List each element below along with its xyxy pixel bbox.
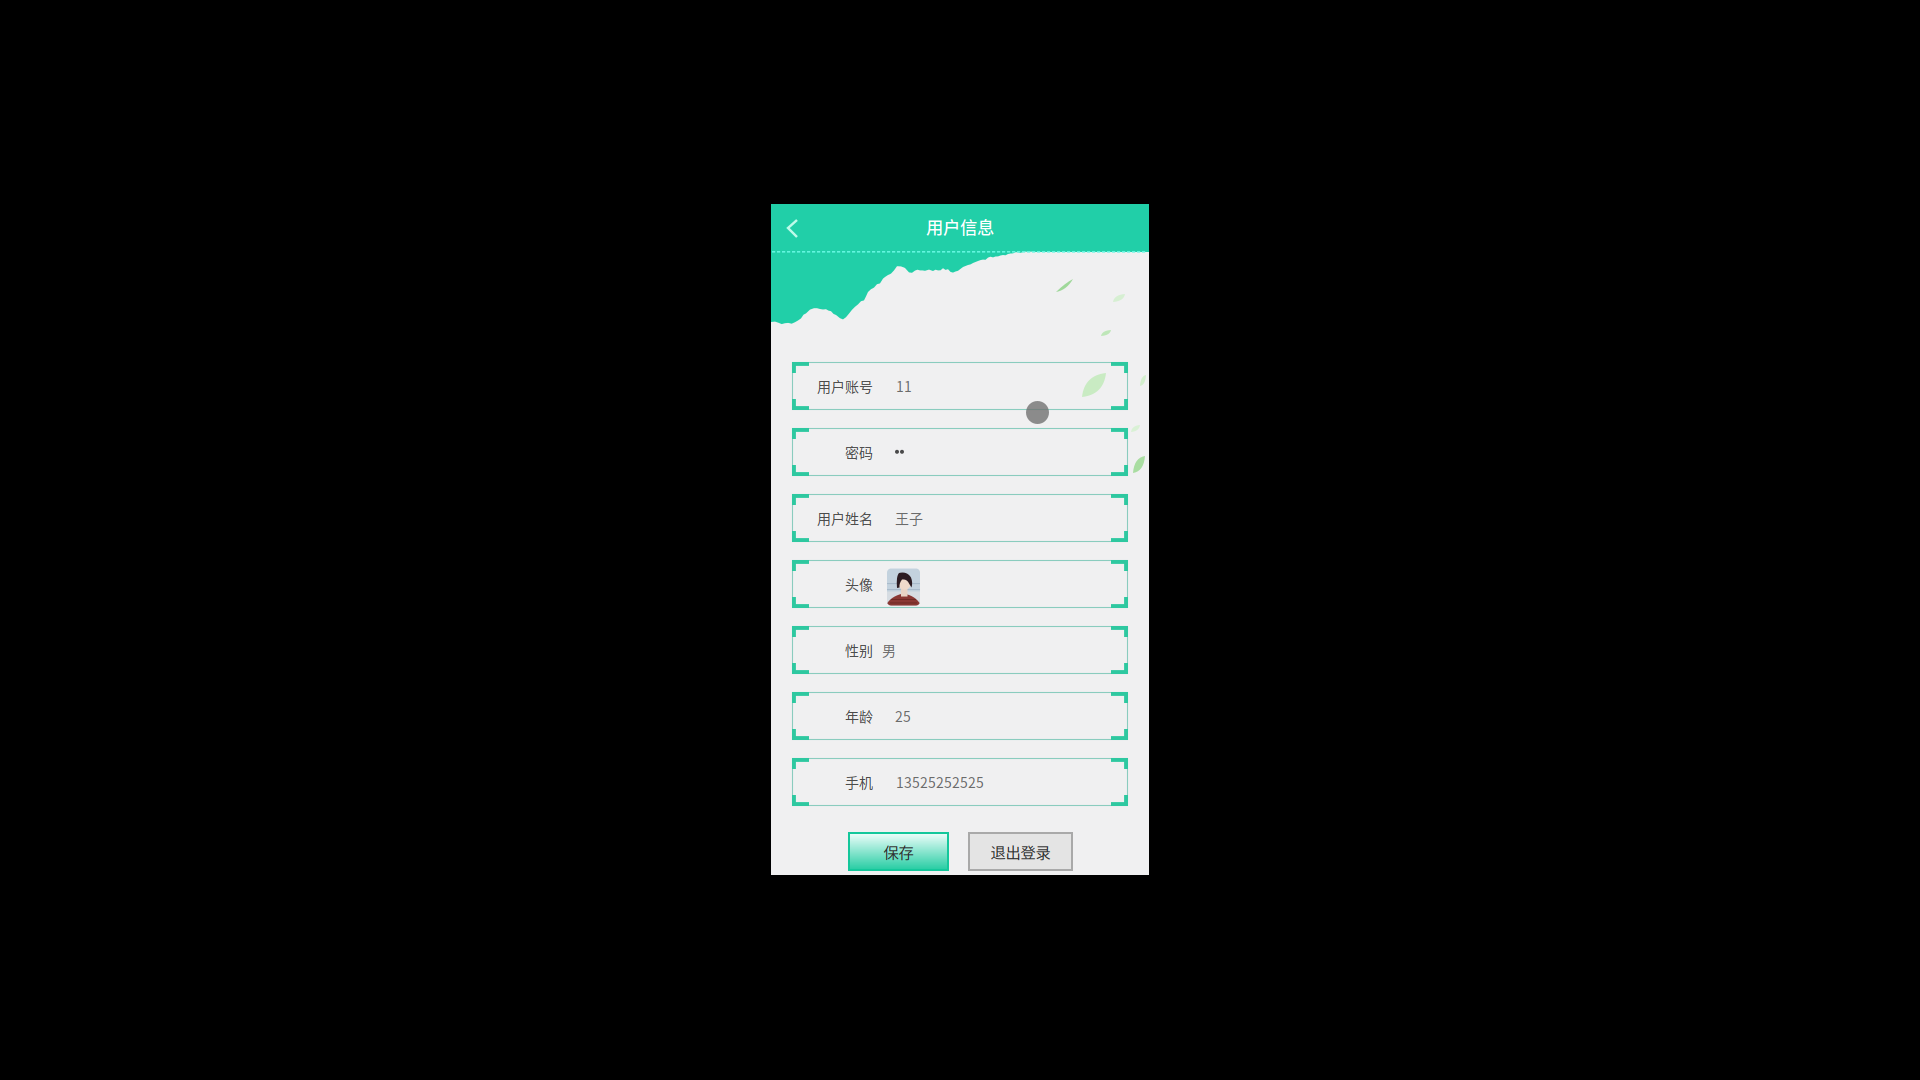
staticText: 用户姓名: [817, 508, 873, 528]
button[interactable]: 头像: [792, 560, 1128, 608]
button[interactable]: 用户账号: [792, 362, 1128, 410]
staticText: 25: [895, 706, 911, 726]
staticText: 男: [882, 640, 896, 660]
button[interactable]: 性别: [792, 626, 1128, 674]
staticText: 保存: [883, 840, 913, 863]
staticText: 年龄: [845, 706, 873, 726]
button[interactable]: 年龄: [792, 692, 1128, 740]
button[interactable]: 手机: [792, 758, 1128, 806]
staticText: 用户账号: [817, 376, 873, 396]
button[interactable]: Back: [771, 204, 815, 249]
button[interactable]: 密码: [792, 428, 1128, 476]
staticText: 11: [896, 376, 912, 396]
staticText: 王子: [895, 508, 923, 528]
staticText: 用户信息: [926, 214, 994, 239]
staticText: 密码: [845, 442, 873, 462]
staticText: 手机: [845, 772, 873, 792]
staticText: 退出登录: [990, 840, 1050, 863]
button[interactable]: 用户姓名: [792, 494, 1128, 542]
staticText: 13525252525: [896, 772, 984, 792]
staticText: 头像: [845, 574, 873, 594]
button[interactable]: 退出登录: [968, 832, 1073, 871]
staticText: 性别: [845, 640, 873, 660]
button[interactable]: 保存: [848, 832, 949, 871]
